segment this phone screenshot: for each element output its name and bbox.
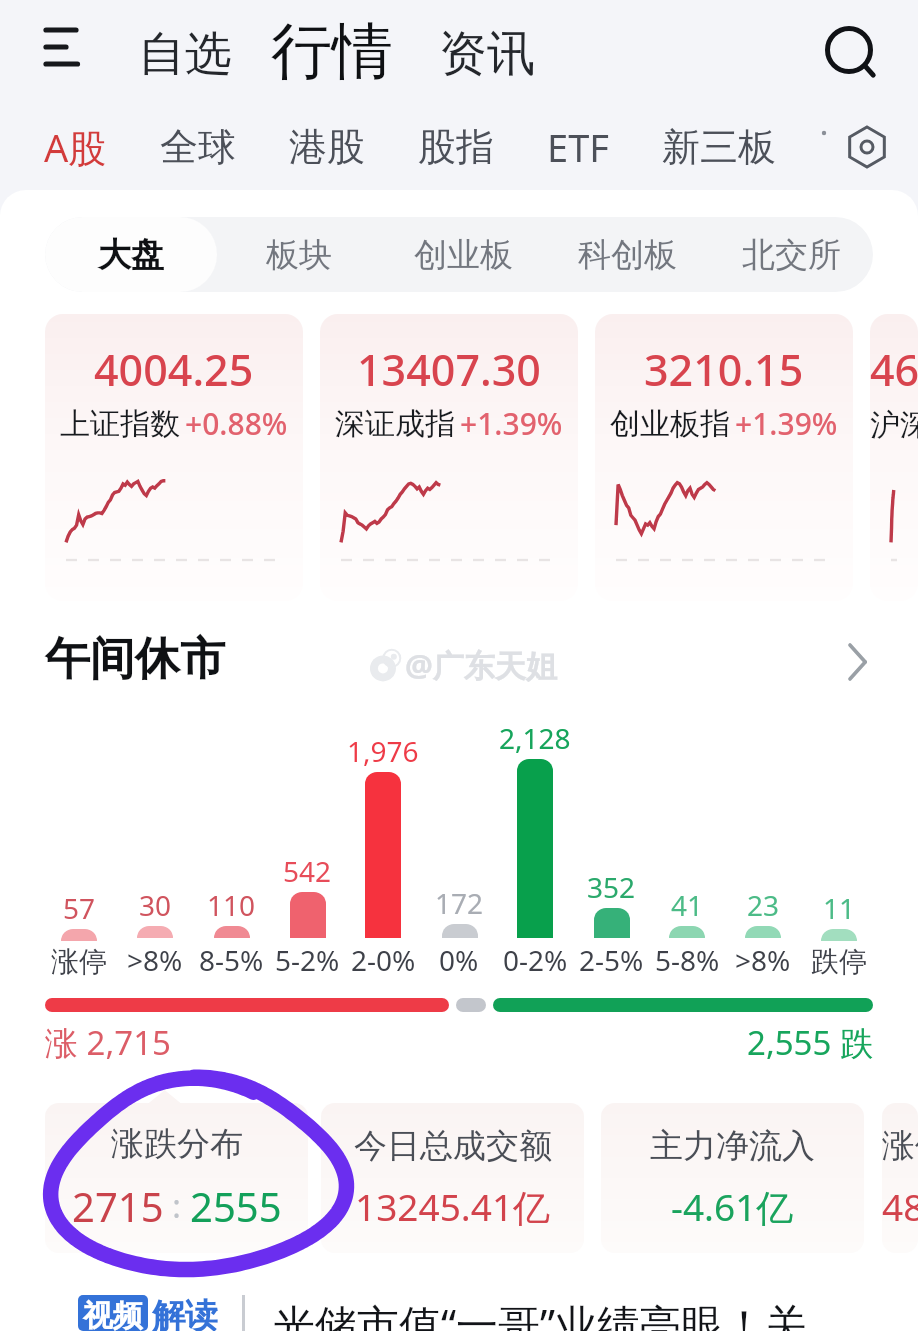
staticText: 4635.09 (870, 340, 918, 399)
staticText: 48家 (882, 1181, 918, 1232)
button[interactable]: 大盘 (45, 217, 217, 292)
button[interactable]: 北交所 (709, 217, 873, 292)
button[interactable]: More (836, 638, 884, 686)
button[interactable]: 3210.15 (595, 314, 853, 601)
button[interactable]: 行情 (267, 10, 397, 93)
button[interactable]: 今日总成交额 (321, 1103, 584, 1253)
staticText: +1.39% (460, 403, 563, 444)
staticText: 23 (747, 886, 780, 924)
button[interactable]: 午间休市 (45, 631, 225, 688)
staticText: 资讯 (439, 24, 535, 84)
staticText: 542 (283, 852, 332, 890)
staticText: 110 (207, 886, 256, 924)
staticText: +1.39% (735, 403, 838, 444)
button[interactable]: 板块 (217, 217, 381, 292)
staticText: 板块 (266, 234, 332, 276)
staticText: 涨跌分布 (111, 1123, 243, 1165)
staticText: 科创板 (578, 234, 677, 276)
staticText: +0.88% (185, 403, 288, 444)
button[interactable]: 解读 (150, 1295, 220, 1331)
staticText: A股 (44, 121, 107, 173)
staticText: 自选 (138, 25, 232, 84)
staticText: 沪深300 (870, 403, 918, 444)
button[interactable]: 主力净流入 (601, 1103, 864, 1253)
staticText: 2-5% (579, 941, 644, 979)
button[interactable]: 创业板 (381, 217, 545, 292)
button[interactable]: ETF (536, 113, 620, 181)
staticText: 2715 (72, 1179, 164, 1233)
staticText: 3210.15 (644, 340, 804, 399)
button[interactable]: 13407.30 (320, 314, 578, 601)
staticText: 上证指数 (60, 405, 180, 443)
button[interactable]: 4004.25 (45, 314, 303, 601)
staticText: 解读 (152, 1295, 218, 1331)
button[interactable]: 科创板 (545, 217, 709, 292)
staticText: -4.61亿 (671, 1181, 794, 1232)
button[interactable]: Search (819, 23, 873, 77)
button[interactable]: 涨跌分布 (45, 1103, 308, 1253)
button[interactable]: 4635.09 (870, 314, 918, 601)
staticText: 创业板指 (610, 405, 730, 443)
staticText: 5-2% (275, 941, 340, 979)
staticText: 港股 (289, 123, 365, 171)
staticText: 涨停 (51, 944, 107, 979)
staticText: ETF (547, 121, 609, 173)
staticText: 大盘 (98, 234, 164, 276)
staticText: 2-0% (351, 941, 416, 979)
staticText: 8-5% (199, 941, 264, 979)
staticText: 41 (671, 886, 704, 924)
staticText: 13245.41亿 (355, 1181, 551, 1232)
staticText: 股指 (418, 123, 494, 171)
staticText: @广东天姐 (405, 644, 557, 686)
staticText: 视频 (83, 1297, 143, 1329)
staticText: 2,128 (499, 719, 571, 757)
staticText: 13407.30 (357, 340, 541, 399)
staticText: >8% (735, 941, 791, 979)
button[interactable]: 资讯 (435, 15, 539, 93)
staticText: 57 (63, 889, 96, 927)
staticText: 光储市值“一哥”业绩亮眼！关… (273, 1295, 841, 1331)
staticText: 4004.25 (94, 340, 254, 399)
staticText: 今日总成交额 (354, 1125, 552, 1167)
button[interactable]: 股指 (407, 115, 505, 179)
staticText: 涨 2,715 (45, 1020, 171, 1065)
button[interactable]: A股 (33, 113, 118, 181)
staticText: 172 (435, 884, 484, 922)
staticText: 1,976 (347, 732, 419, 770)
staticText: 行情 (271, 13, 393, 90)
staticText: 涨停家数 (882, 1125, 918, 1167)
staticText: >8% (127, 941, 183, 979)
staticText: 0-2% (503, 941, 568, 979)
staticText: 深证成指 (335, 405, 455, 443)
staticText: 创业板 (414, 234, 513, 276)
button[interactable]: Settings (841, 121, 893, 173)
staticText: 2,555 跌 (747, 1020, 873, 1065)
staticText: 北交所 (742, 234, 841, 276)
staticText: 跌停 (811, 944, 867, 979)
button[interactable]: 自选 (134, 16, 236, 93)
button[interactable]: 新三板 (651, 115, 787, 179)
staticText: 30 (139, 886, 172, 924)
staticText: 352 (587, 868, 636, 906)
button[interactable]: 港股 (278, 115, 376, 179)
staticText: 全球 (160, 123, 236, 171)
staticText: 5-8% (655, 941, 720, 979)
staticText: 0% (439, 941, 479, 979)
staticText: 2555 (190, 1179, 282, 1233)
button[interactable]: 全球 (149, 115, 247, 179)
staticText: 主力净流入 (650, 1125, 815, 1167)
staticText: : (164, 1184, 190, 1228)
staticText: 新三板 (662, 123, 776, 171)
button[interactable]: 涨停家数 (882, 1103, 918, 1253)
staticText: 午间休市 (45, 631, 225, 688)
button[interactable]: Menu (44, 32, 84, 72)
button[interactable]: 视频 (83, 1297, 143, 1329)
staticText: 11 (823, 889, 856, 927)
